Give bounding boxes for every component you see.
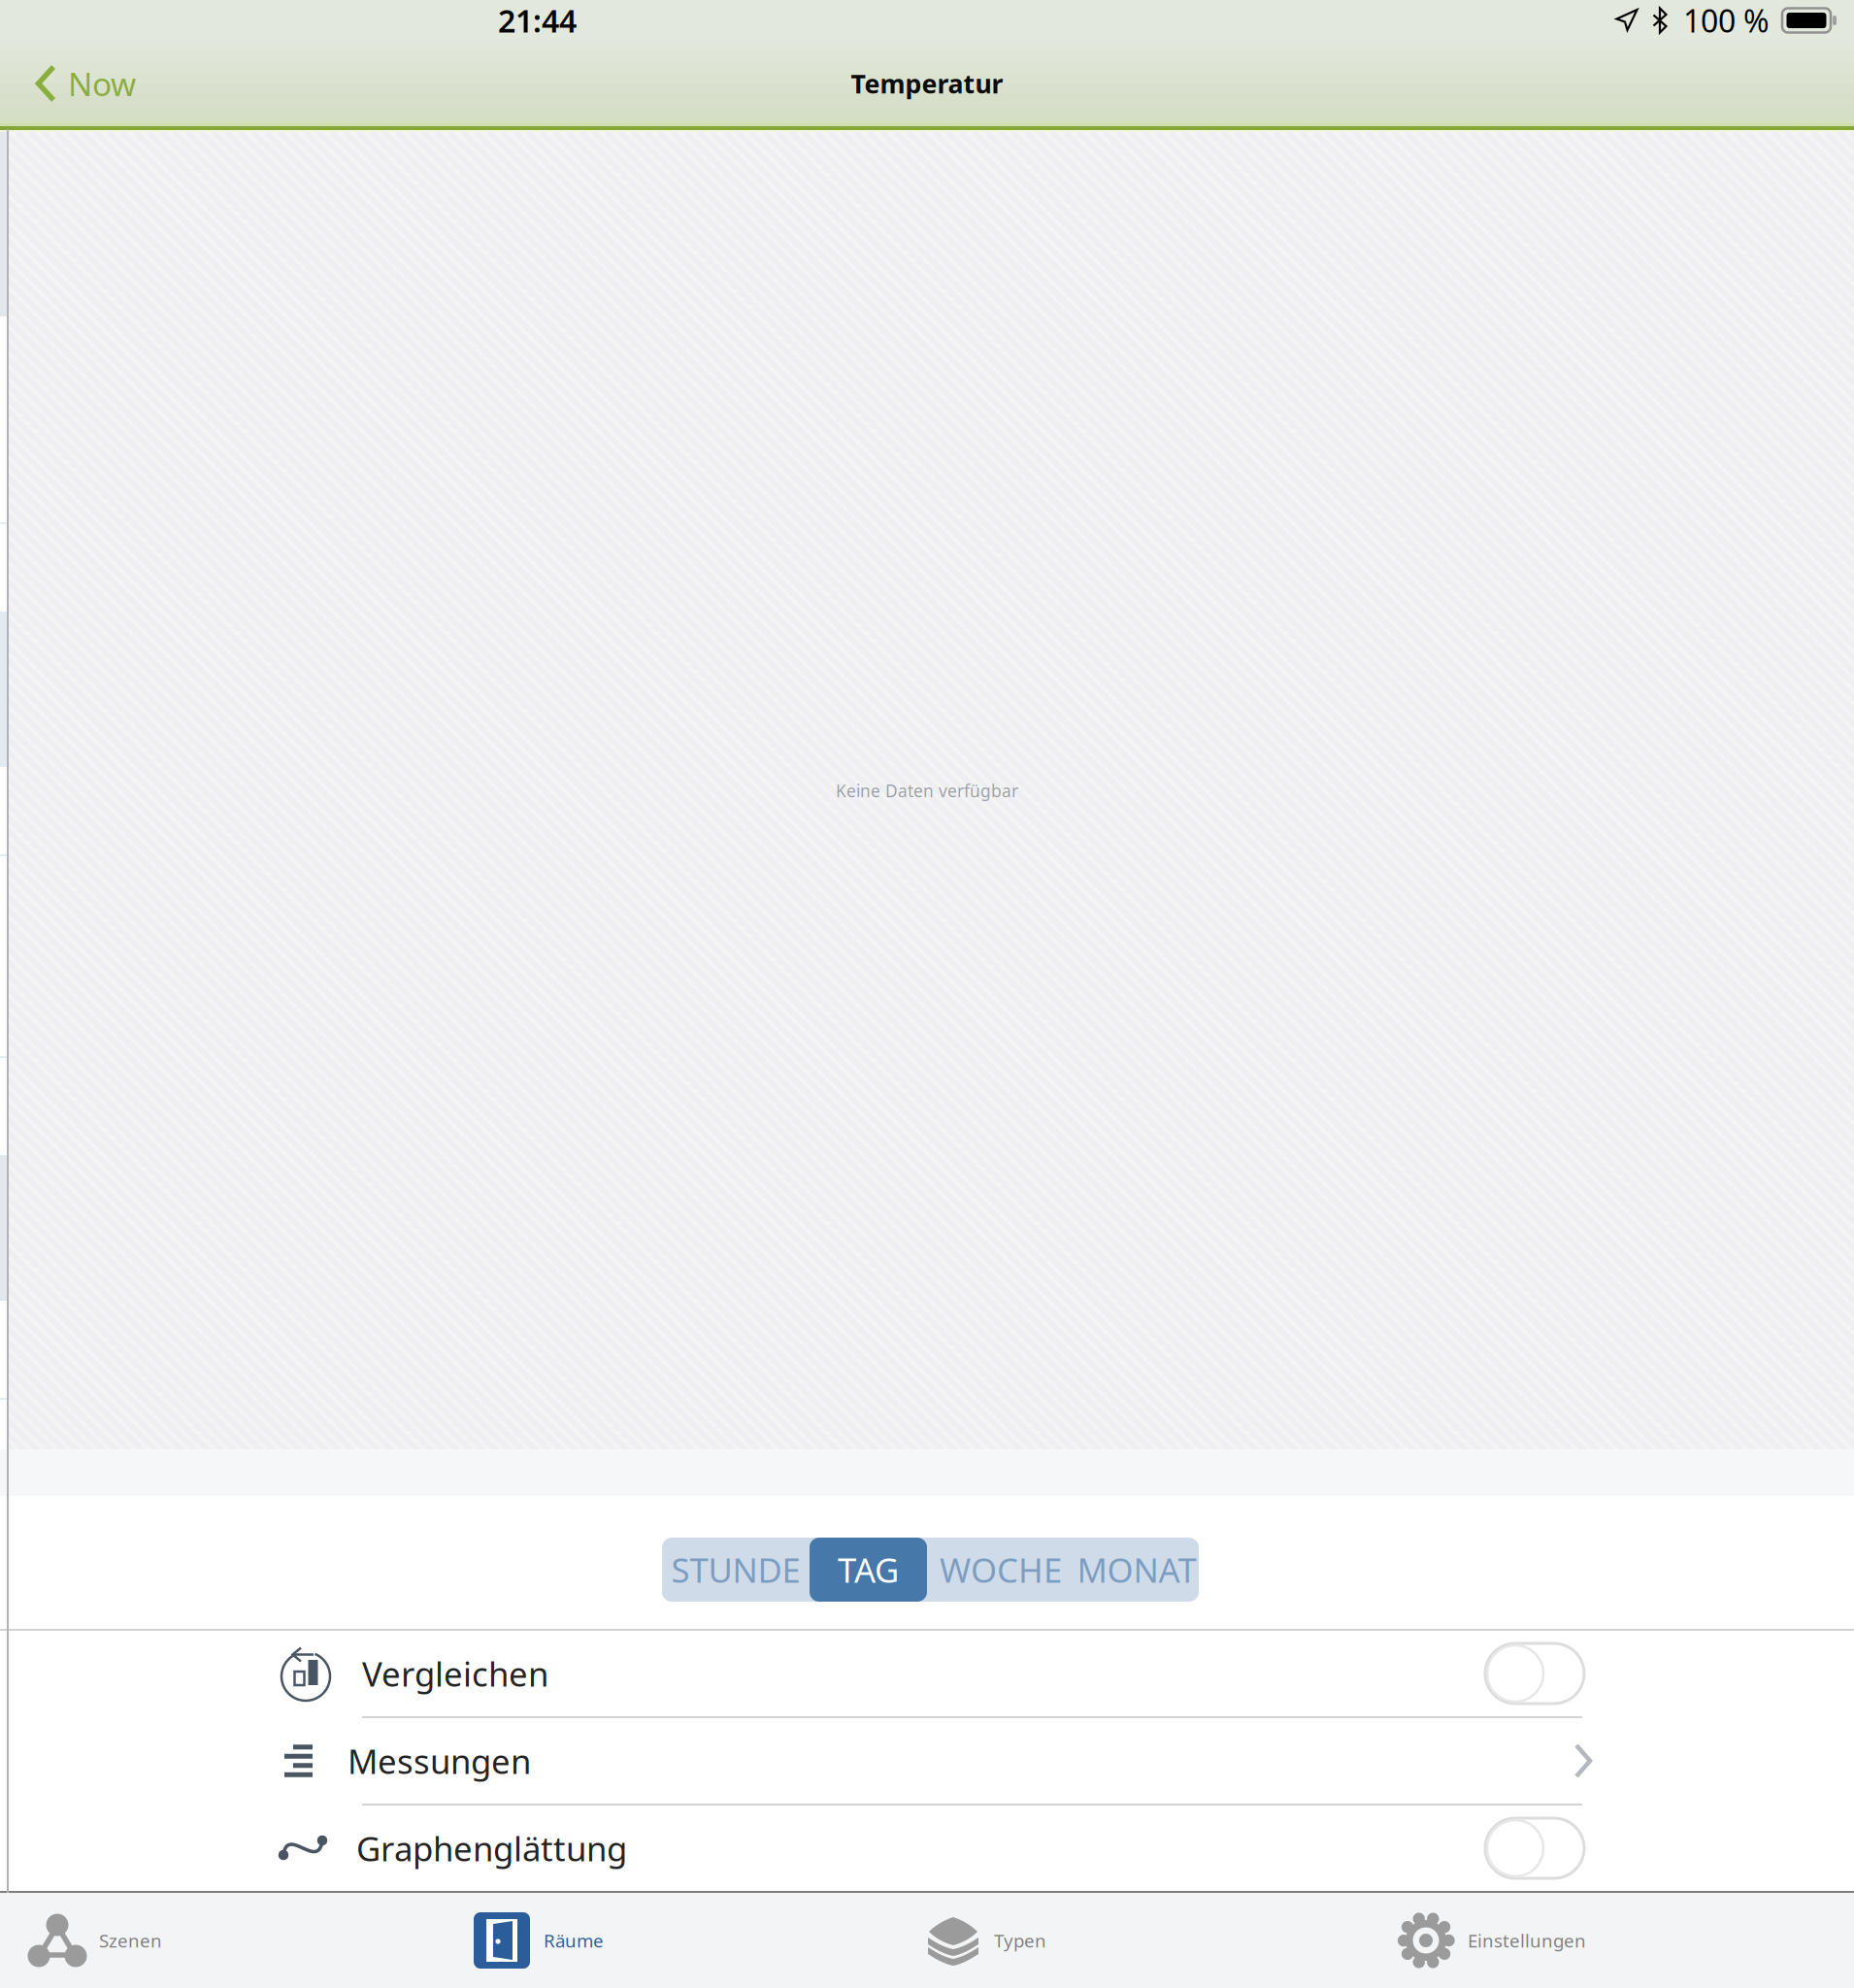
button[interactable]: Messungen xyxy=(0,1718,1854,1804)
staticText: Typen xyxy=(994,1928,1046,1952)
button[interactable]: STUNDE xyxy=(662,1538,810,1602)
staticText: Keine Daten verfügbar xyxy=(836,779,1018,802)
staticText: Messungen xyxy=(348,1739,531,1783)
button[interactable]: Typen xyxy=(926,1893,1389,1988)
staticText: Räume xyxy=(544,1928,604,1952)
button[interactable]: Now xyxy=(0,41,155,126)
button[interactable]: Räume xyxy=(463,1893,926,1988)
button[interactable]: Vergleichen ein- oder ausschalten xyxy=(1485,1643,1584,1704)
button[interactable]: Vergleichen xyxy=(0,1631,1854,1716)
staticText: 21:44 xyxy=(498,0,577,41)
staticText: Vergleichen xyxy=(362,1651,548,1696)
staticText: MONAT xyxy=(1077,1547,1196,1592)
staticText: STUNDE xyxy=(671,1547,800,1592)
button[interactable]: Graphenglättung ein- oder ausschalten xyxy=(1485,1818,1584,1878)
staticText: 100 % xyxy=(1683,0,1770,41)
button[interactable]: Einstellungen xyxy=(1389,1893,1854,1988)
button[interactable]: TAG xyxy=(810,1538,927,1602)
button[interactable]: MONAT xyxy=(1075,1538,1199,1602)
button[interactable]: WOCHE xyxy=(927,1538,1075,1602)
staticText: WOCHE xyxy=(940,1547,1062,1592)
staticText: Einstellungen xyxy=(1468,1928,1586,1952)
button[interactable]: Szenen xyxy=(0,1893,463,1988)
button[interactable]: Graphenglättung xyxy=(0,1806,1854,1891)
staticText: Now xyxy=(68,62,136,105)
staticText: TAG xyxy=(838,1547,899,1592)
staticText: Graphenglättung xyxy=(356,1826,627,1871)
staticText: Szenen xyxy=(99,1928,162,1952)
staticText: Temperatur xyxy=(851,66,1003,101)
